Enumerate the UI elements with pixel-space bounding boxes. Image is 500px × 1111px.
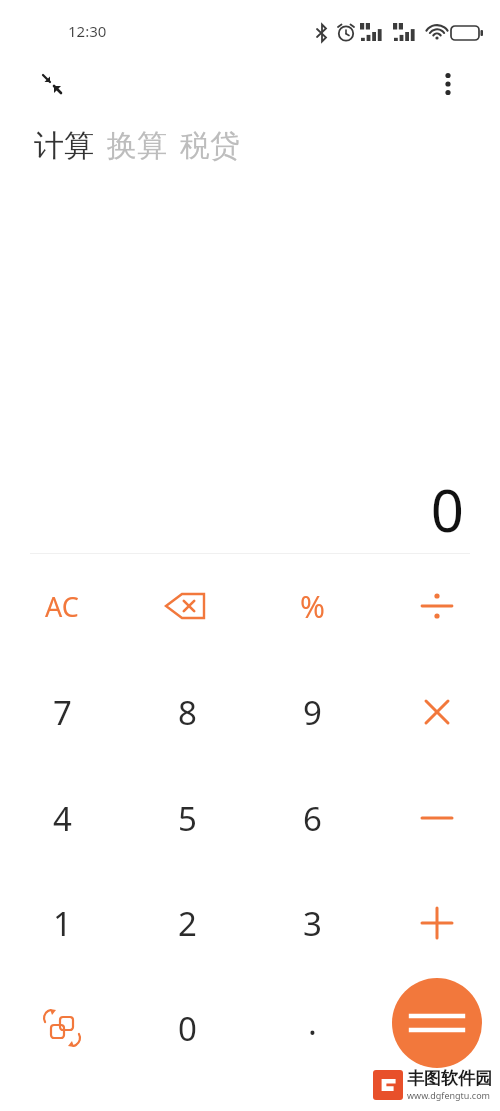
button[interactable]: 7 <box>19 669 105 755</box>
button[interactable]: 0 <box>144 985 230 1071</box>
button[interactable]: 计算 <box>34 123 94 169</box>
button[interactable]: 5 <box>144 775 230 861</box>
staticText: 换算 <box>107 127 167 165</box>
staticText: 0 <box>0 470 464 549</box>
staticText: 8 <box>178 690 197 735</box>
staticText: 计算 <box>34 127 94 165</box>
staticText: % <box>300 586 325 627</box>
button[interactable]: 3 <box>269 880 355 966</box>
staticText: 7 <box>53 690 72 735</box>
button[interactable]: Unit converter <box>19 985 105 1071</box>
button[interactable]: AC <box>19 563 105 649</box>
staticText: www.dgfengtu.com <box>407 1089 491 1101</box>
staticText: 6 <box>303 796 322 841</box>
button[interactable]: 税贷 <box>180 123 240 169</box>
button[interactable]: 换算 <box>107 123 167 169</box>
staticText: 5 <box>178 796 197 841</box>
button[interactable]: 9 <box>269 669 355 755</box>
button[interactable]: . <box>269 979 355 1065</box>
staticText: 1 <box>53 901 72 946</box>
staticText: 12:30 <box>68 21 107 41</box>
button[interactable]: Collapse <box>34 66 70 102</box>
button[interactable]: 2 <box>144 880 230 966</box>
staticText: AC <box>45 588 79 625</box>
button[interactable]: Plus <box>394 880 480 966</box>
button[interactable]: Equals <box>392 978 482 1068</box>
button[interactable]: % <box>269 563 355 649</box>
staticText: 4 <box>53 796 72 841</box>
staticText: 0 <box>178 1006 197 1051</box>
staticText: 丰图软件园 <box>407 1068 492 1089</box>
staticText: 3 <box>303 901 322 946</box>
button[interactable]: Minus <box>394 775 480 861</box>
staticText: . <box>308 1000 317 1045</box>
button[interactable]: 1 <box>19 880 105 966</box>
button[interactable]: 6 <box>269 775 355 861</box>
button[interactable]: 8 <box>144 669 230 755</box>
staticText: 2 <box>178 901 197 946</box>
staticText: 税贷 <box>180 127 240 165</box>
button[interactable]: More options <box>430 66 466 102</box>
staticText: 9 <box>303 690 322 735</box>
button[interactable]: Multiply <box>394 669 480 755</box>
button[interactable]: Divide <box>394 563 480 649</box>
button[interactable]: 4 <box>19 775 105 861</box>
button[interactable]: Backspace <box>144 563 230 649</box>
